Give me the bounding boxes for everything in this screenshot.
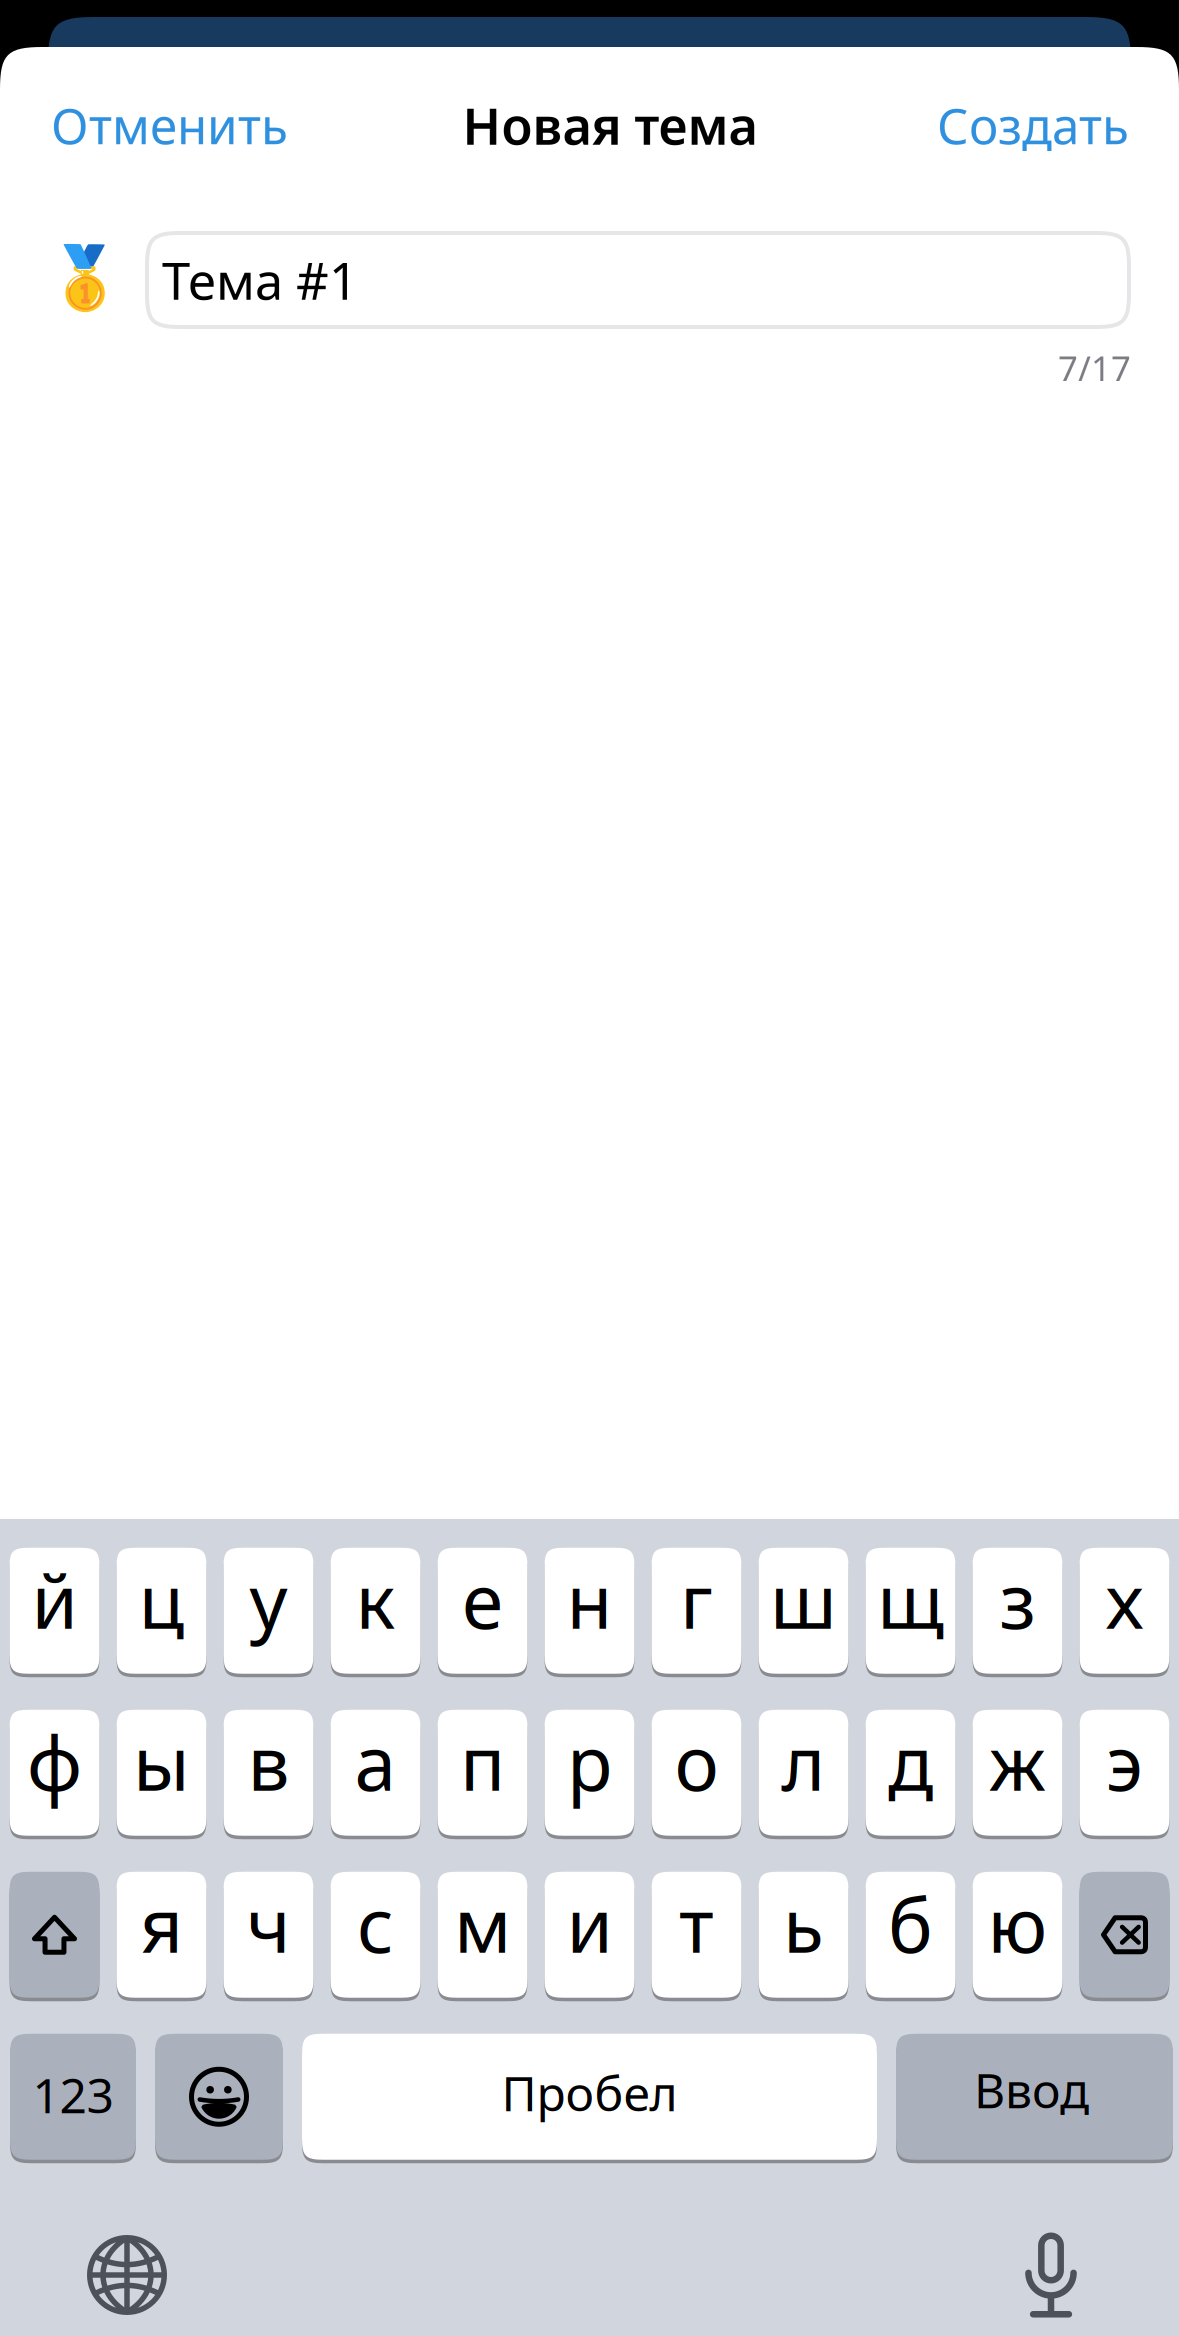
- button[interactable]: а: [330, 1708, 420, 1837]
- staticText: Ввод: [974, 2058, 1089, 2122]
- button[interactable]: Shift: [9, 1870, 99, 1999]
- staticText: т: [679, 1874, 714, 1973]
- staticText: щ: [877, 1550, 944, 1649]
- staticText: ч: [246, 1874, 290, 1973]
- staticText: б: [888, 1874, 933, 1973]
- button[interactable]: Тема #1: [145, 231, 1131, 329]
- button[interactable]: о: [651, 1708, 741, 1837]
- staticText: 123: [32, 2063, 113, 2127]
- button[interactable]: ю: [972, 1870, 1062, 1999]
- staticText: а: [354, 1712, 396, 1811]
- staticText: и: [566, 1874, 612, 1973]
- staticText: л: [781, 1712, 825, 1811]
- staticText: в: [247, 1712, 289, 1811]
- staticText: х: [1105, 1550, 1143, 1649]
- staticText: з: [999, 1550, 1035, 1649]
- button[interactable]: б: [865, 1870, 955, 1999]
- button[interactable]: з: [972, 1546, 1062, 1675]
- button[interactable]: Создать: [869, 88, 1129, 162]
- button[interactable]: х: [1079, 1546, 1169, 1675]
- staticText: 7/17: [1058, 345, 1131, 391]
- button[interactable]: и: [544, 1870, 634, 1999]
- button[interactable]: л: [758, 1708, 848, 1837]
- staticText: п: [460, 1712, 505, 1811]
- staticText: г: [680, 1550, 713, 1649]
- staticText: я: [140, 1874, 183, 1973]
- staticText: ц: [138, 1550, 184, 1649]
- button[interactable]: е: [437, 1546, 527, 1675]
- staticText: Пробел: [501, 2061, 677, 2125]
- button[interactable]: Next keyboard: [57, 2215, 197, 2335]
- staticText: м: [454, 1874, 511, 1973]
- button[interactable]: м: [437, 1870, 527, 1999]
- button[interactable]: т: [651, 1870, 741, 1999]
- button[interactable]: ь: [758, 1870, 848, 1999]
- staticText: с: [357, 1874, 394, 1973]
- button[interactable]: Emoji: [155, 2032, 283, 2161]
- staticText: ы: [133, 1712, 190, 1811]
- button[interactable]: Dictate: [986, 2215, 1116, 2335]
- staticText: д: [888, 1712, 933, 1811]
- button[interactable]: у: [223, 1546, 313, 1675]
- button[interactable]: ч: [223, 1870, 313, 1999]
- button[interactable]: в: [223, 1708, 313, 1837]
- staticText: ю: [987, 1874, 1047, 1973]
- button[interactable]: ы: [116, 1708, 206, 1837]
- button[interactable]: Ввод: [896, 2032, 1173, 2161]
- button[interactable]: д: [865, 1708, 955, 1837]
- button[interactable]: Numbers: [10, 2032, 136, 2161]
- staticText: ш: [770, 1550, 837, 1649]
- staticText: э: [1106, 1712, 1143, 1811]
- button[interactable]: Пробел: [302, 2032, 877, 2161]
- staticText: н: [566, 1550, 612, 1649]
- staticText: о: [674, 1712, 718, 1811]
- staticText: ф: [27, 1712, 82, 1811]
- button[interactable]: ш: [758, 1546, 848, 1675]
- button[interactable]: н: [544, 1546, 634, 1675]
- staticText: Тема #1: [162, 246, 358, 314]
- staticText: Создать: [937, 92, 1129, 158]
- staticText: к: [355, 1550, 395, 1649]
- button[interactable]: с: [330, 1870, 420, 1999]
- staticText: Новая тема: [462, 91, 757, 159]
- button[interactable]: г: [651, 1546, 741, 1675]
- button[interactable]: ц: [116, 1546, 206, 1675]
- button[interactable]: п: [437, 1708, 527, 1837]
- button[interactable]: Отменить: [51, 88, 311, 162]
- button[interactable]: р: [544, 1708, 634, 1837]
- staticText: ь: [783, 1874, 824, 1973]
- button[interactable]: й: [9, 1546, 99, 1675]
- button[interactable]: Delete: [1079, 1870, 1169, 1999]
- staticText: 🥇: [47, 243, 123, 313]
- button[interactable]: я: [116, 1870, 206, 1999]
- staticText: е: [462, 1550, 503, 1649]
- staticText: й: [31, 1550, 77, 1649]
- staticText: Отменить: [51, 92, 288, 158]
- button[interactable]: ф: [9, 1708, 99, 1837]
- staticText: ж: [989, 1712, 1046, 1811]
- button[interactable]: э: [1079, 1708, 1169, 1837]
- staticText: у: [249, 1550, 287, 1649]
- button[interactable]: щ: [865, 1546, 955, 1675]
- button[interactable]: ж: [972, 1708, 1062, 1837]
- staticText: р: [567, 1712, 612, 1811]
- button[interactable]: к: [330, 1546, 420, 1675]
